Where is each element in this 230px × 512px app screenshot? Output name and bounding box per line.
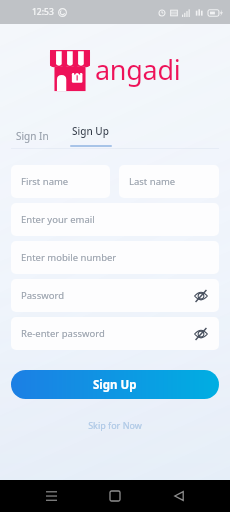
staticText: Password: [21, 289, 64, 302]
button[interactable]: Show password: [193, 288, 209, 304]
button[interactable]: Password: [11, 279, 219, 312]
button[interactable]: Re-enter password: [11, 317, 219, 350]
staticText: Re-enter password: [21, 327, 105, 340]
staticText: Enter mobile number: [21, 251, 117, 264]
button[interactable]: Home: [102, 483, 128, 509]
button[interactable]: First name: [11, 165, 110, 198]
staticText: Sign In: [16, 129, 49, 143]
button[interactable]: Back: [166, 483, 192, 509]
staticText: 12:53: [32, 6, 54, 18]
button[interactable]: Skip for Now: [78, 415, 152, 435]
button[interactable]: Enter your email: [11, 203, 219, 236]
staticText: Sign Up: [72, 124, 109, 138]
staticText: First name: [21, 175, 69, 188]
button[interactable]: Sign Up: [67, 120, 114, 147]
staticText: Enter your email: [21, 213, 95, 226]
staticText: Skip for Now: [88, 419, 142, 431]
button[interactable]: Show password: [193, 326, 209, 342]
button[interactable]: Sign In: [12, 125, 53, 147]
staticText: Sign Up: [93, 377, 137, 393]
staticText: angadi: [95, 51, 181, 88]
staticText: Last name: [129, 175, 176, 188]
button[interactable]: Recent apps: [38, 483, 64, 509]
button[interactable]: Enter mobile number: [11, 241, 219, 274]
button[interactable]: Last name: [119, 165, 219, 198]
button[interactable]: Sign Up: [11, 370, 219, 399]
